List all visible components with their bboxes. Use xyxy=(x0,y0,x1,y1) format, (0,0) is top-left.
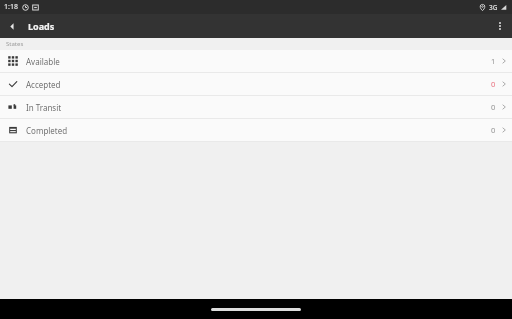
button[interactable]: Accepted xyxy=(0,73,512,95)
staticText: Available xyxy=(26,56,60,67)
button[interactable]: More options xyxy=(488,14,512,38)
staticText: 1 xyxy=(491,56,496,66)
button[interactable]: Back xyxy=(0,14,24,38)
staticText: In Transit xyxy=(26,102,62,113)
staticText: 0 xyxy=(491,102,496,112)
button[interactable]: Available xyxy=(0,50,512,72)
staticText: 0 xyxy=(491,79,496,89)
staticText: 3G xyxy=(489,3,498,12)
staticText: States xyxy=(6,40,24,48)
button[interactable]: In Transit xyxy=(0,96,512,118)
button[interactable]: Completed xyxy=(0,119,512,141)
staticText: 0 xyxy=(491,125,496,135)
staticText: Loads xyxy=(28,20,55,32)
staticText: Accepted xyxy=(26,79,61,90)
staticText: 1:18 xyxy=(4,2,18,12)
staticText: Completed xyxy=(26,125,68,136)
